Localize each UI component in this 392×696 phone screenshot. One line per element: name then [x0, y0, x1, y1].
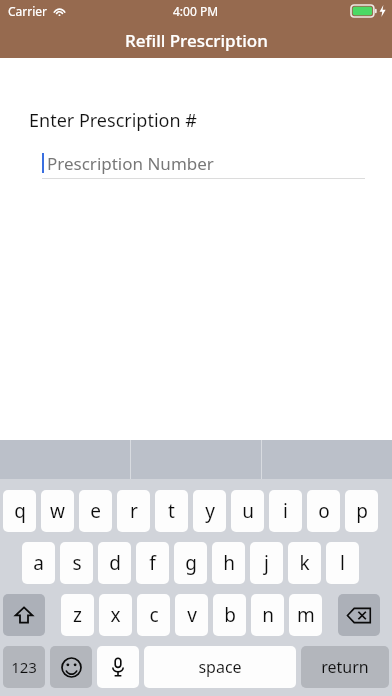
staticText: a [33, 550, 44, 576]
staticText: return [321, 656, 369, 678]
button[interactable]: Prescription Number [42, 147, 365, 179]
staticText: d [109, 550, 121, 576]
button[interactable]: v [175, 594, 208, 636]
staticText: k [299, 550, 310, 576]
staticText: Carrier [8, 3, 48, 19]
staticText: m [297, 602, 315, 628]
staticText: space [198, 656, 242, 678]
staticText: y [205, 498, 215, 524]
button[interactable]: o [307, 490, 340, 532]
button[interactable]: Voice input [97, 646, 139, 688]
button[interactable]: a [22, 542, 55, 584]
button[interactable]: 123 [3, 646, 45, 688]
staticText: u [242, 498, 254, 524]
button[interactable]: d [98, 542, 131, 584]
staticText: g [185, 550, 197, 576]
button[interactable]: g [174, 542, 207, 584]
staticText: n [262, 602, 274, 628]
button[interactable]: j [250, 542, 283, 584]
staticText: h [223, 550, 235, 576]
button[interactable]: q [3, 490, 36, 532]
button[interactable]: Emoji [50, 646, 92, 688]
button[interactable]: b [213, 594, 246, 636]
button[interactable]: p [345, 490, 378, 532]
staticText: i [283, 498, 288, 524]
button[interactable]: i [269, 490, 302, 532]
button[interactable]: x [99, 594, 132, 636]
button[interactable]: r [117, 490, 150, 532]
button[interactable]: l [326, 542, 359, 584]
staticText: Prescription Number [47, 152, 214, 175]
button[interactable]: e [79, 490, 112, 532]
button[interactable]: k [288, 542, 321, 584]
staticText: x [110, 602, 121, 628]
button[interactable]: y [193, 490, 226, 532]
staticText: j [264, 550, 269, 576]
staticText: b [224, 602, 236, 628]
staticText: p [356, 498, 368, 524]
button[interactable]: m [289, 594, 322, 636]
button[interactable]: s [60, 542, 93, 584]
staticText: w [50, 498, 65, 524]
staticText: l [340, 550, 345, 576]
button[interactable]: z [61, 594, 94, 636]
staticText: r [130, 498, 138, 524]
staticText: 123 [11, 657, 37, 677]
staticText: z [73, 602, 82, 628]
button[interactable]: n [251, 594, 284, 636]
button[interactable]: Backspace [338, 594, 380, 636]
staticText: 4:00 PM [173, 3, 219, 19]
staticText: e [90, 498, 101, 524]
button[interactable]: w [41, 490, 74, 532]
staticText: q [14, 498, 26, 524]
button[interactable]: h [212, 542, 245, 584]
staticText: s [72, 550, 82, 576]
staticText: o [318, 498, 330, 524]
button[interactable]: Shift [3, 594, 45, 636]
button[interactable]: space [144, 646, 296, 688]
staticText: Enter Prescription # [29, 108, 197, 133]
button[interactable]: return [301, 646, 389, 688]
button[interactable]: t [155, 490, 188, 532]
staticText: Refill Prescription [125, 29, 268, 52]
staticText: v [187, 602, 197, 628]
staticText: f [149, 550, 156, 576]
button[interactable]: c [137, 594, 170, 636]
staticText: c [149, 602, 159, 628]
button[interactable]: f [136, 542, 169, 584]
button[interactable]: u [231, 490, 264, 532]
staticText: t [168, 498, 175, 524]
